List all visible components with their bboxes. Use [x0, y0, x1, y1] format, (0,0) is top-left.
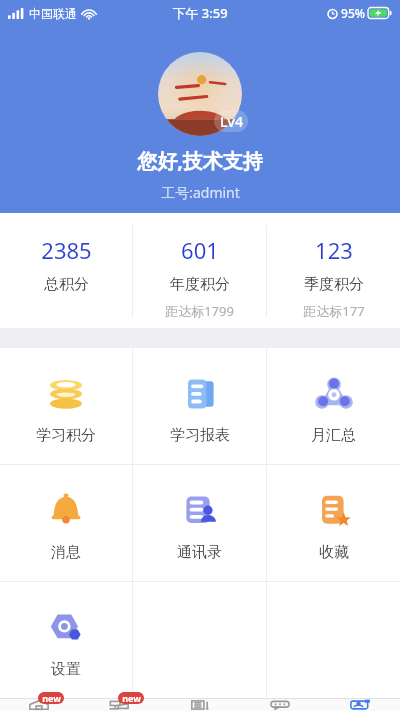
staticText: 收藏 — [319, 543, 349, 562]
button[interactable]: 学习报表 — [133, 348, 266, 464]
staticText: new — [42, 692, 61, 704]
button[interactable]: 学习积分 — [0, 348, 132, 464]
button[interactable]: 601 — [133, 213, 266, 328]
button[interactable]: 消息 — [0, 465, 132, 581]
staticText: 95% — [341, 5, 365, 21]
button[interactable]: 论坛 — [240, 699, 320, 711]
staticText: 总积分 — [44, 275, 89, 294]
button[interactable]: 2385 — [0, 213, 132, 328]
staticText: 年度积分 — [170, 275, 230, 294]
staticText: 月汇总 — [311, 426, 356, 445]
button[interactable]: 考核 — [160, 699, 240, 711]
staticText: 601 — [181, 235, 219, 265]
staticText: 距达标177 — [303, 302, 365, 320]
staticText: 您好,技术支持 — [137, 147, 263, 174]
staticText: new — [122, 692, 141, 704]
staticText: 中国联通 — [29, 6, 77, 21]
button[interactable]: 通讯录 — [133, 465, 266, 581]
button[interactable]: 设置 — [0, 582, 132, 698]
staticText: 通讯录 — [177, 543, 222, 562]
button[interactable]: 123 — [267, 213, 400, 328]
staticText: 工号:admint — [161, 183, 240, 202]
staticText: 下午 3:59 — [172, 4, 228, 22]
staticText: 季度积分 — [304, 275, 364, 294]
staticText: 设置 — [51, 660, 81, 679]
button[interactable]: 月汇总 — [267, 348, 400, 464]
staticText: 123 — [315, 235, 353, 265]
button[interactable]: new — [80, 699, 160, 711]
staticText: Lv4 — [220, 112, 243, 131]
button[interactable]: new — [0, 699, 80, 711]
button[interactable]: 收藏 — [267, 465, 400, 581]
staticText: 距达标1799 — [165, 302, 234, 320]
staticText: 学习报表 — [170, 426, 230, 445]
staticText: 2385 — [41, 235, 92, 265]
staticText: 学习积分 — [36, 426, 96, 445]
staticText: 消息 — [51, 543, 81, 562]
button[interactable]: 我的 — [320, 699, 400, 711]
